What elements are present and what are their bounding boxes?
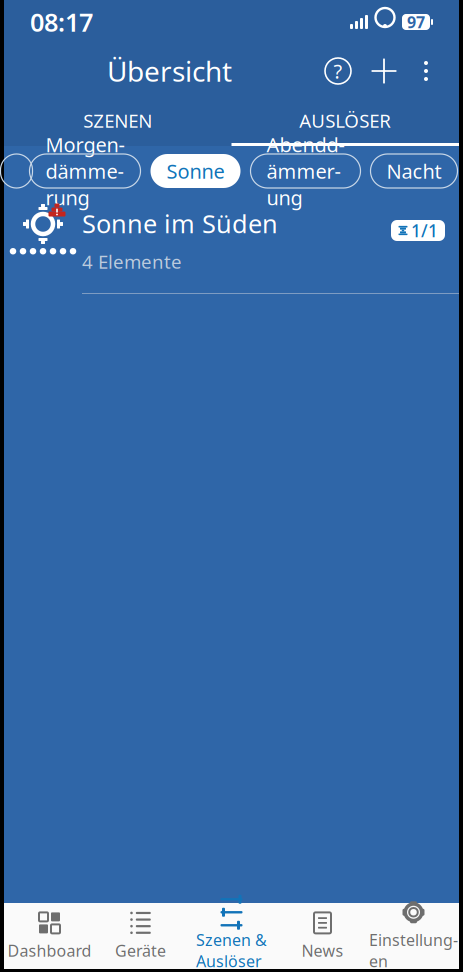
button[interactable]: News [277,903,368,969]
button[interactable]: SZENEN [4,98,231,146]
staticText: Einstellungen [369,929,458,972]
staticText: 08:17 [30,5,93,39]
button[interactable]: Hilfe [315,48,361,94]
button[interactable]: Sonne [150,154,240,188]
button[interactable]: Geräte [95,903,186,969]
staticText: Sonne im Süden [82,207,278,240]
button[interactable]: Sonne im Süden [4,196,459,294]
staticText: AUSLÖSER [299,108,391,133]
staticText: News [301,940,343,961]
button[interactable]: Abenddämmerung [250,154,360,188]
button[interactable]: Morgendämmerung [29,154,140,188]
button[interactable]: Hinzufügen [361,48,407,94]
staticText: Sonne [166,158,224,184]
staticText: 1/1 [411,219,438,242]
staticText: 4 Elemente [82,249,182,274]
staticText: ? [333,58,342,84]
staticText: Szenen & Auslöser [196,929,267,972]
staticText: Geräte [115,940,166,961]
staticText: Morgendämmerung [45,131,124,211]
button[interactable]: AUSLÖSER [231,98,459,146]
button[interactable]: Weitere Optionen [407,48,445,94]
button[interactable]: Nacht [0,154,32,188]
staticText: Dashboard [7,940,91,961]
staticText: SZENEN [83,108,152,133]
staticText: 97 [407,11,425,33]
button[interactable]: Einstellungen [368,903,459,969]
staticText: Übersicht [107,52,232,90]
button[interactable]: Szenen & Auslöser [186,903,277,969]
button[interactable]: Nacht [370,154,457,188]
staticText: Nacht [386,158,441,184]
staticText: Abenddämmerung [266,131,344,211]
button[interactable]: Dashboard [4,903,95,969]
